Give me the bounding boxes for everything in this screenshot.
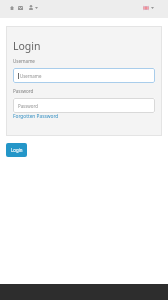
button[interactable]: Language [143,0,154,15]
button[interactable]: Password [13,98,155,113]
staticText: Forgotten Password [13,113,59,120]
button[interactable]: Forgotten Password [13,113,59,120]
staticText: Login [13,39,41,53]
staticText: Password [13,88,34,94]
staticText: Login [11,147,23,153]
button[interactable]: Messages [16,0,25,15]
button[interactable]: Login [6,143,27,157]
button[interactable]: Home [7,0,16,15]
button[interactable]: Account [28,0,40,15]
staticText: Password [18,103,38,109]
staticText: Username [13,58,35,64]
button[interactable]: Username [13,68,155,83]
staticText: Username [20,73,42,79]
